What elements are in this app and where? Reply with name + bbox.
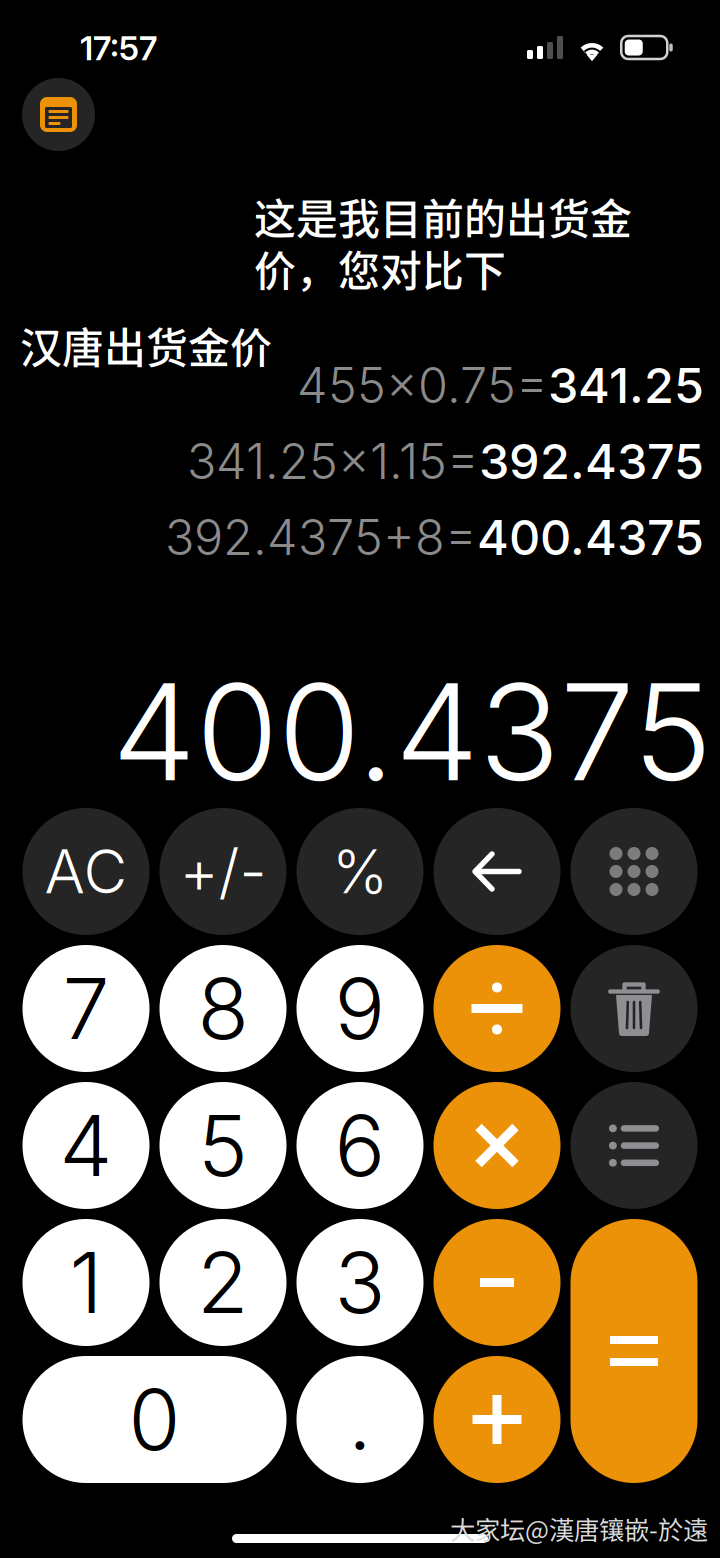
staticText: 价，您对比下 (254, 238, 506, 299)
button[interactable] (570, 1219, 697, 1483)
staticText: 392.4375+8= (165, 508, 477, 567)
button[interactable]: 7 (22, 945, 149, 1072)
staticText: 341.25 (548, 356, 704, 415)
button[interactable] (433, 1082, 560, 1209)
staticText: 这是我目前的出货金 (254, 186, 632, 247)
button[interactable] (433, 1356, 560, 1483)
staticText: +/- (179, 835, 266, 908)
button[interactable]: AC (22, 808, 149, 935)
button[interactable] (570, 808, 697, 935)
staticText: 6 (334, 1095, 385, 1196)
staticText: 4 (59, 1095, 112, 1196)
staticText: 8 (197, 958, 248, 1059)
button[interactable]: 5 (159, 1082, 286, 1209)
staticText: 大家坛@漢唐镶嵌-於遠 (450, 1510, 708, 1547)
staticText: AC (44, 835, 127, 908)
staticText: 9 (334, 958, 385, 1059)
button[interactable]: 9 (296, 945, 423, 1072)
staticText: 2 (197, 1232, 249, 1333)
staticText: 455×0.75= (297, 356, 548, 415)
button[interactable]: . (296, 1356, 423, 1483)
button[interactable]: 3 (296, 1219, 423, 1346)
staticText: % (332, 835, 388, 908)
staticText: 400.4375 (477, 508, 704, 567)
staticText: 1 (69, 1232, 102, 1333)
button[interactable]: 4 (22, 1082, 149, 1209)
staticText: 0 (128, 1369, 180, 1470)
button[interactable] (570, 1082, 697, 1209)
button[interactable]: 1 (22, 1219, 149, 1346)
button[interactable]: % (296, 808, 423, 935)
button[interactable]: 6 (296, 1082, 423, 1209)
staticText: 汉唐出货金价 (20, 315, 272, 376)
staticText: 400.4375 (112, 651, 712, 812)
button[interactable]: Notes (22, 78, 95, 151)
staticText: 17:57 (80, 28, 157, 68)
staticText: . (348, 1369, 372, 1470)
staticText: 7 (62, 958, 109, 1059)
staticText: 341.25×1.15= (187, 432, 479, 491)
button[interactable]: 0 (22, 1356, 286, 1483)
button[interactable] (570, 945, 697, 1072)
button[interactable] (433, 808, 560, 935)
button[interactable] (433, 1219, 560, 1346)
button[interactable] (433, 945, 560, 1072)
staticText: 3 (334, 1232, 385, 1333)
staticText: 392.4375 (479, 432, 704, 491)
button[interactable]: 8 (159, 945, 286, 1072)
button[interactable]: 2 (159, 1219, 286, 1346)
staticText: 5 (198, 1095, 248, 1196)
button[interactable]: +/- (159, 808, 286, 935)
